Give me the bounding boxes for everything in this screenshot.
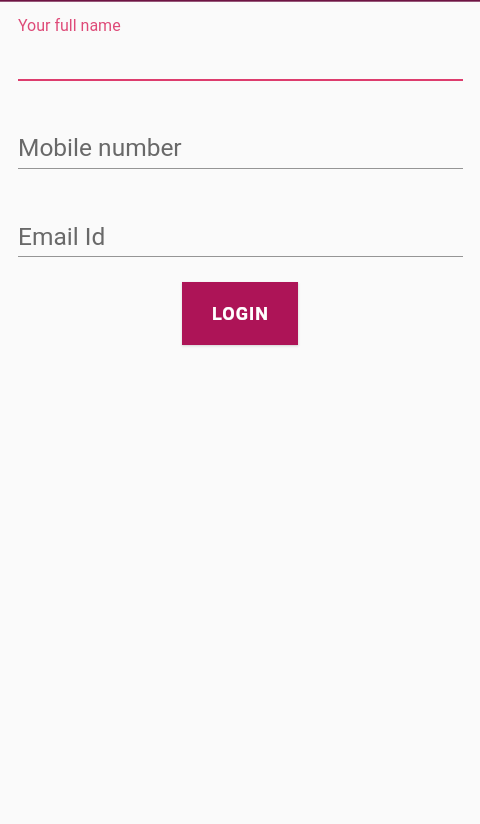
button[interactable]: Email Id bbox=[18, 220, 463, 257]
staticText: LOGIN bbox=[212, 303, 269, 324]
other: Status bar bbox=[0, 0, 480, 3]
button[interactable]: LOGIN bbox=[182, 282, 298, 345]
button[interactable]: Mobile number bbox=[18, 131, 463, 169]
staticText: Mobile number bbox=[18, 133, 182, 162]
button[interactable]: Your full name bbox=[18, 6, 463, 81]
staticText: Email Id bbox=[18, 222, 106, 251]
staticText: Your full name bbox=[18, 16, 121, 35]
